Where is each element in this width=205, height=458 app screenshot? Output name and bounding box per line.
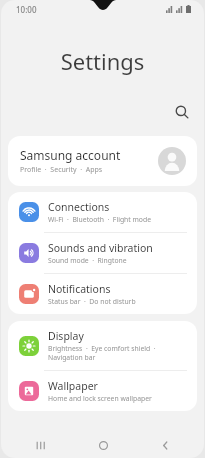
button[interactable]: Home <box>80 432 126 458</box>
staticText: Wi-Fi · Bluetooth · Flight mode <box>48 215 151 224</box>
button[interactable]: Back <box>142 432 188 458</box>
staticText: Samsung account <box>20 147 121 163</box>
button[interactable]: Samsung account <box>8 136 197 186</box>
button[interactable]: Wallpaper <box>8 371 197 411</box>
staticText: Home and lock screen wallpaper <box>48 394 152 403</box>
staticText: Sound mode · Ringtone <box>48 256 127 265</box>
staticText: 10:00 <box>16 4 37 15</box>
staticText: Profile · Security · Apps <box>20 165 103 175</box>
staticText: Sounds and vibration <box>48 241 153 255</box>
button[interactable]: Display <box>8 321 197 370</box>
button[interactable]: Search <box>168 98 196 126</box>
button[interactable]: Sounds and vibration <box>8 233 197 273</box>
button[interactable]: Recent apps <box>17 432 63 458</box>
staticText: Status bar · Do not disturb <box>48 297 136 306</box>
button[interactable]: Notifications <box>8 274 197 314</box>
staticText: Notifications <box>48 282 111 296</box>
staticText: Connections <box>48 200 110 214</box>
button[interactable]: Connections <box>8 192 197 232</box>
staticText: Brightness · Eye comfort shield · Naviga… <box>48 344 187 362</box>
staticText: Wallpaper <box>48 379 98 393</box>
staticText: Display <box>48 329 84 343</box>
staticText: Settings <box>1 46 204 76</box>
